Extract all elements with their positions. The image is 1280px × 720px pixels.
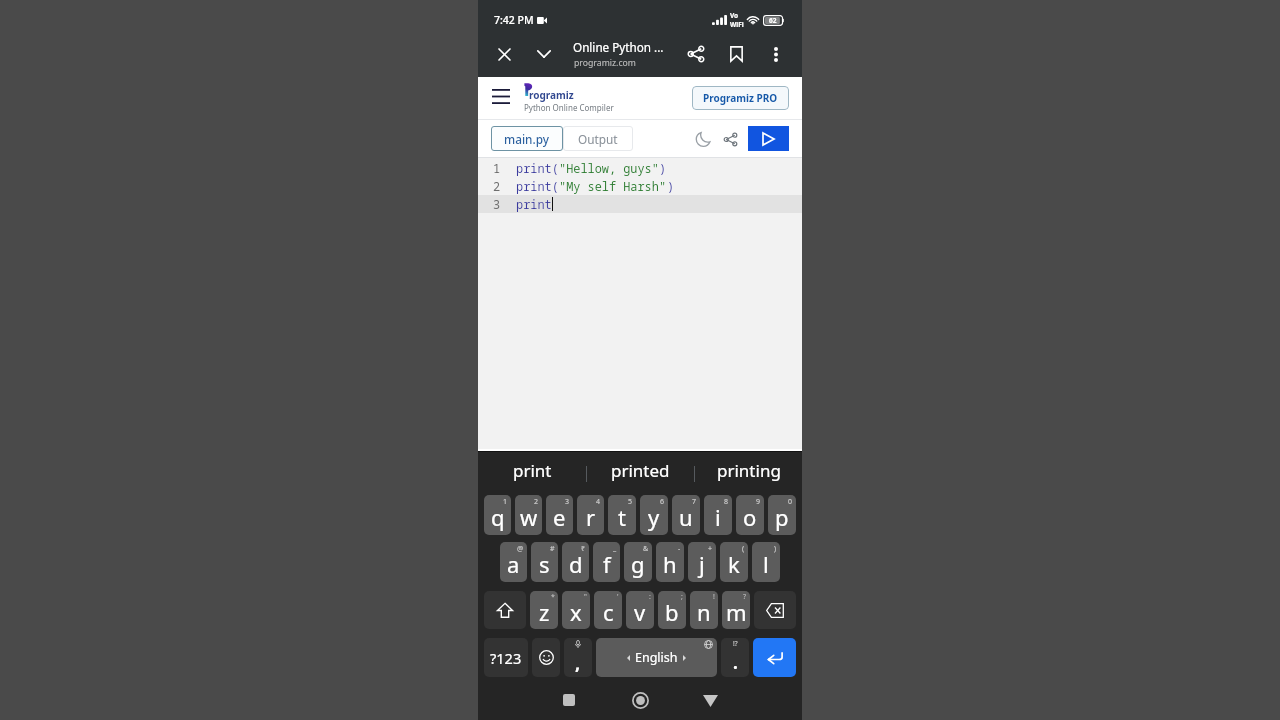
staticText: p [775, 502, 789, 532]
button[interactable]: Menu [487, 82, 515, 110]
staticText: WiFi [730, 20, 744, 29]
button[interactable]: Run [748, 126, 789, 151]
button[interactable]: 5 [608, 495, 636, 535]
button[interactable]: ) [752, 542, 780, 582]
staticText: _ [613, 544, 617, 554]
button[interactable]: printing [695, 452, 802, 495]
staticText: z [539, 597, 550, 627]
staticText: English [635, 649, 678, 666]
staticText: ₹ [581, 544, 586, 554]
staticText: f [603, 549, 611, 579]
staticText: 0 [788, 497, 793, 507]
button[interactable]: Close [488, 38, 520, 70]
staticText: m [726, 597, 747, 627]
staticText: a [507, 549, 520, 579]
button[interactable]: Share code [717, 126, 743, 152]
staticText: ) [774, 544, 777, 554]
button[interactable]: " [562, 591, 590, 629]
button[interactable]: Output [563, 126, 633, 151]
button[interactable]: ?123 [484, 638, 528, 677]
button[interactable]: , [564, 638, 592, 677]
button[interactable]: printed [587, 452, 694, 495]
button[interactable]: English [596, 638, 717, 677]
button[interactable]: ₹ [562, 542, 589, 582]
button[interactable]: Emoji [532, 638, 560, 677]
staticText: ' [617, 592, 619, 602]
button[interactable]: Recents [547, 679, 591, 720]
button[interactable]: # [531, 542, 558, 582]
staticText: printed [611, 459, 670, 482]
staticText: 8 [724, 497, 729, 507]
staticText: print( [516, 160, 559, 176]
button[interactable]: 9 [736, 495, 764, 535]
button[interactable]: Backspace [754, 591, 796, 629]
button[interactable]: Share [678, 36, 714, 72]
button[interactable]: : [626, 591, 654, 629]
staticText: j [699, 549, 705, 579]
button[interactable]: Enter [753, 638, 796, 677]
staticText: : [649, 592, 651, 602]
button[interactable]: Shift [484, 591, 526, 629]
staticText: + [708, 544, 713, 554]
button[interactable]: Hide keyboard [688, 679, 732, 720]
button[interactable]: Bookmark [718, 36, 754, 72]
staticText: d [569, 549, 583, 579]
button[interactable]: Programiz PRO [692, 86, 789, 110]
button[interactable]: 3 [546, 495, 573, 535]
button[interactable]: More options [758, 36, 794, 72]
button[interactable]: Dark mode [690, 126, 716, 152]
button[interactable]: 6 [640, 495, 668, 535]
button[interactable]: ; [658, 591, 686, 629]
button[interactable]: print [478, 452, 586, 495]
button[interactable]: 8 [704, 495, 732, 535]
button[interactable]: @ [500, 542, 527, 582]
staticText: Output [578, 131, 618, 147]
button[interactable]: 2 [515, 495, 542, 535]
staticText: " [584, 592, 587, 602]
button[interactable]: _ [593, 542, 620, 582]
staticText: print( [516, 178, 559, 194]
staticText: 4 [596, 497, 601, 507]
staticText: ! [713, 592, 715, 602]
staticText: q [491, 502, 505, 532]
staticText: ; [681, 592, 683, 602]
staticText: 1 [503, 497, 508, 507]
button[interactable]: 4 [577, 495, 604, 535]
button[interactable]: main.py [491, 126, 563, 151]
staticText: * [551, 592, 555, 602]
button[interactable]: !? [721, 638, 749, 677]
staticText: & [643, 544, 649, 554]
staticText: u [679, 502, 693, 532]
staticText: Programiz PRO [703, 91, 778, 105]
button[interactable]: Expand [528, 38, 560, 70]
staticText: rogramiz [529, 88, 574, 102]
staticText: 3 [565, 497, 570, 507]
button[interactable]: 0 [768, 495, 796, 535]
button[interactable]: ? [722, 591, 750, 629]
staticText: n [697, 597, 711, 627]
button[interactable]: * [530, 591, 558, 629]
button[interactable]: 1 [484, 495, 511, 535]
staticText: 2 [493, 178, 501, 194]
button[interactable]: ! [690, 591, 718, 629]
staticText: !? [733, 639, 738, 648]
button[interactable]: 7 [672, 495, 700, 535]
staticText: printing [717, 459, 781, 482]
staticText: 3 [493, 196, 501, 212]
button[interactable]: - [656, 542, 684, 582]
staticText: l [763, 549, 769, 579]
button[interactable]: & [624, 542, 652, 582]
staticText: e [553, 502, 566, 532]
button[interactable]: ( [720, 542, 748, 582]
staticText: "Hellow, guys" [559, 160, 659, 176]
staticText: Online Python ... [573, 39, 664, 55]
staticText: 6 [660, 497, 665, 507]
staticText: b [665, 597, 679, 627]
button[interactable]: Home [618, 679, 662, 720]
staticText: # [550, 544, 555, 554]
staticText: 7 [692, 497, 697, 507]
staticText: v [634, 597, 646, 627]
button[interactable]: + [688, 542, 716, 582]
button[interactable]: ' [594, 591, 622, 629]
staticText: k [728, 549, 740, 579]
